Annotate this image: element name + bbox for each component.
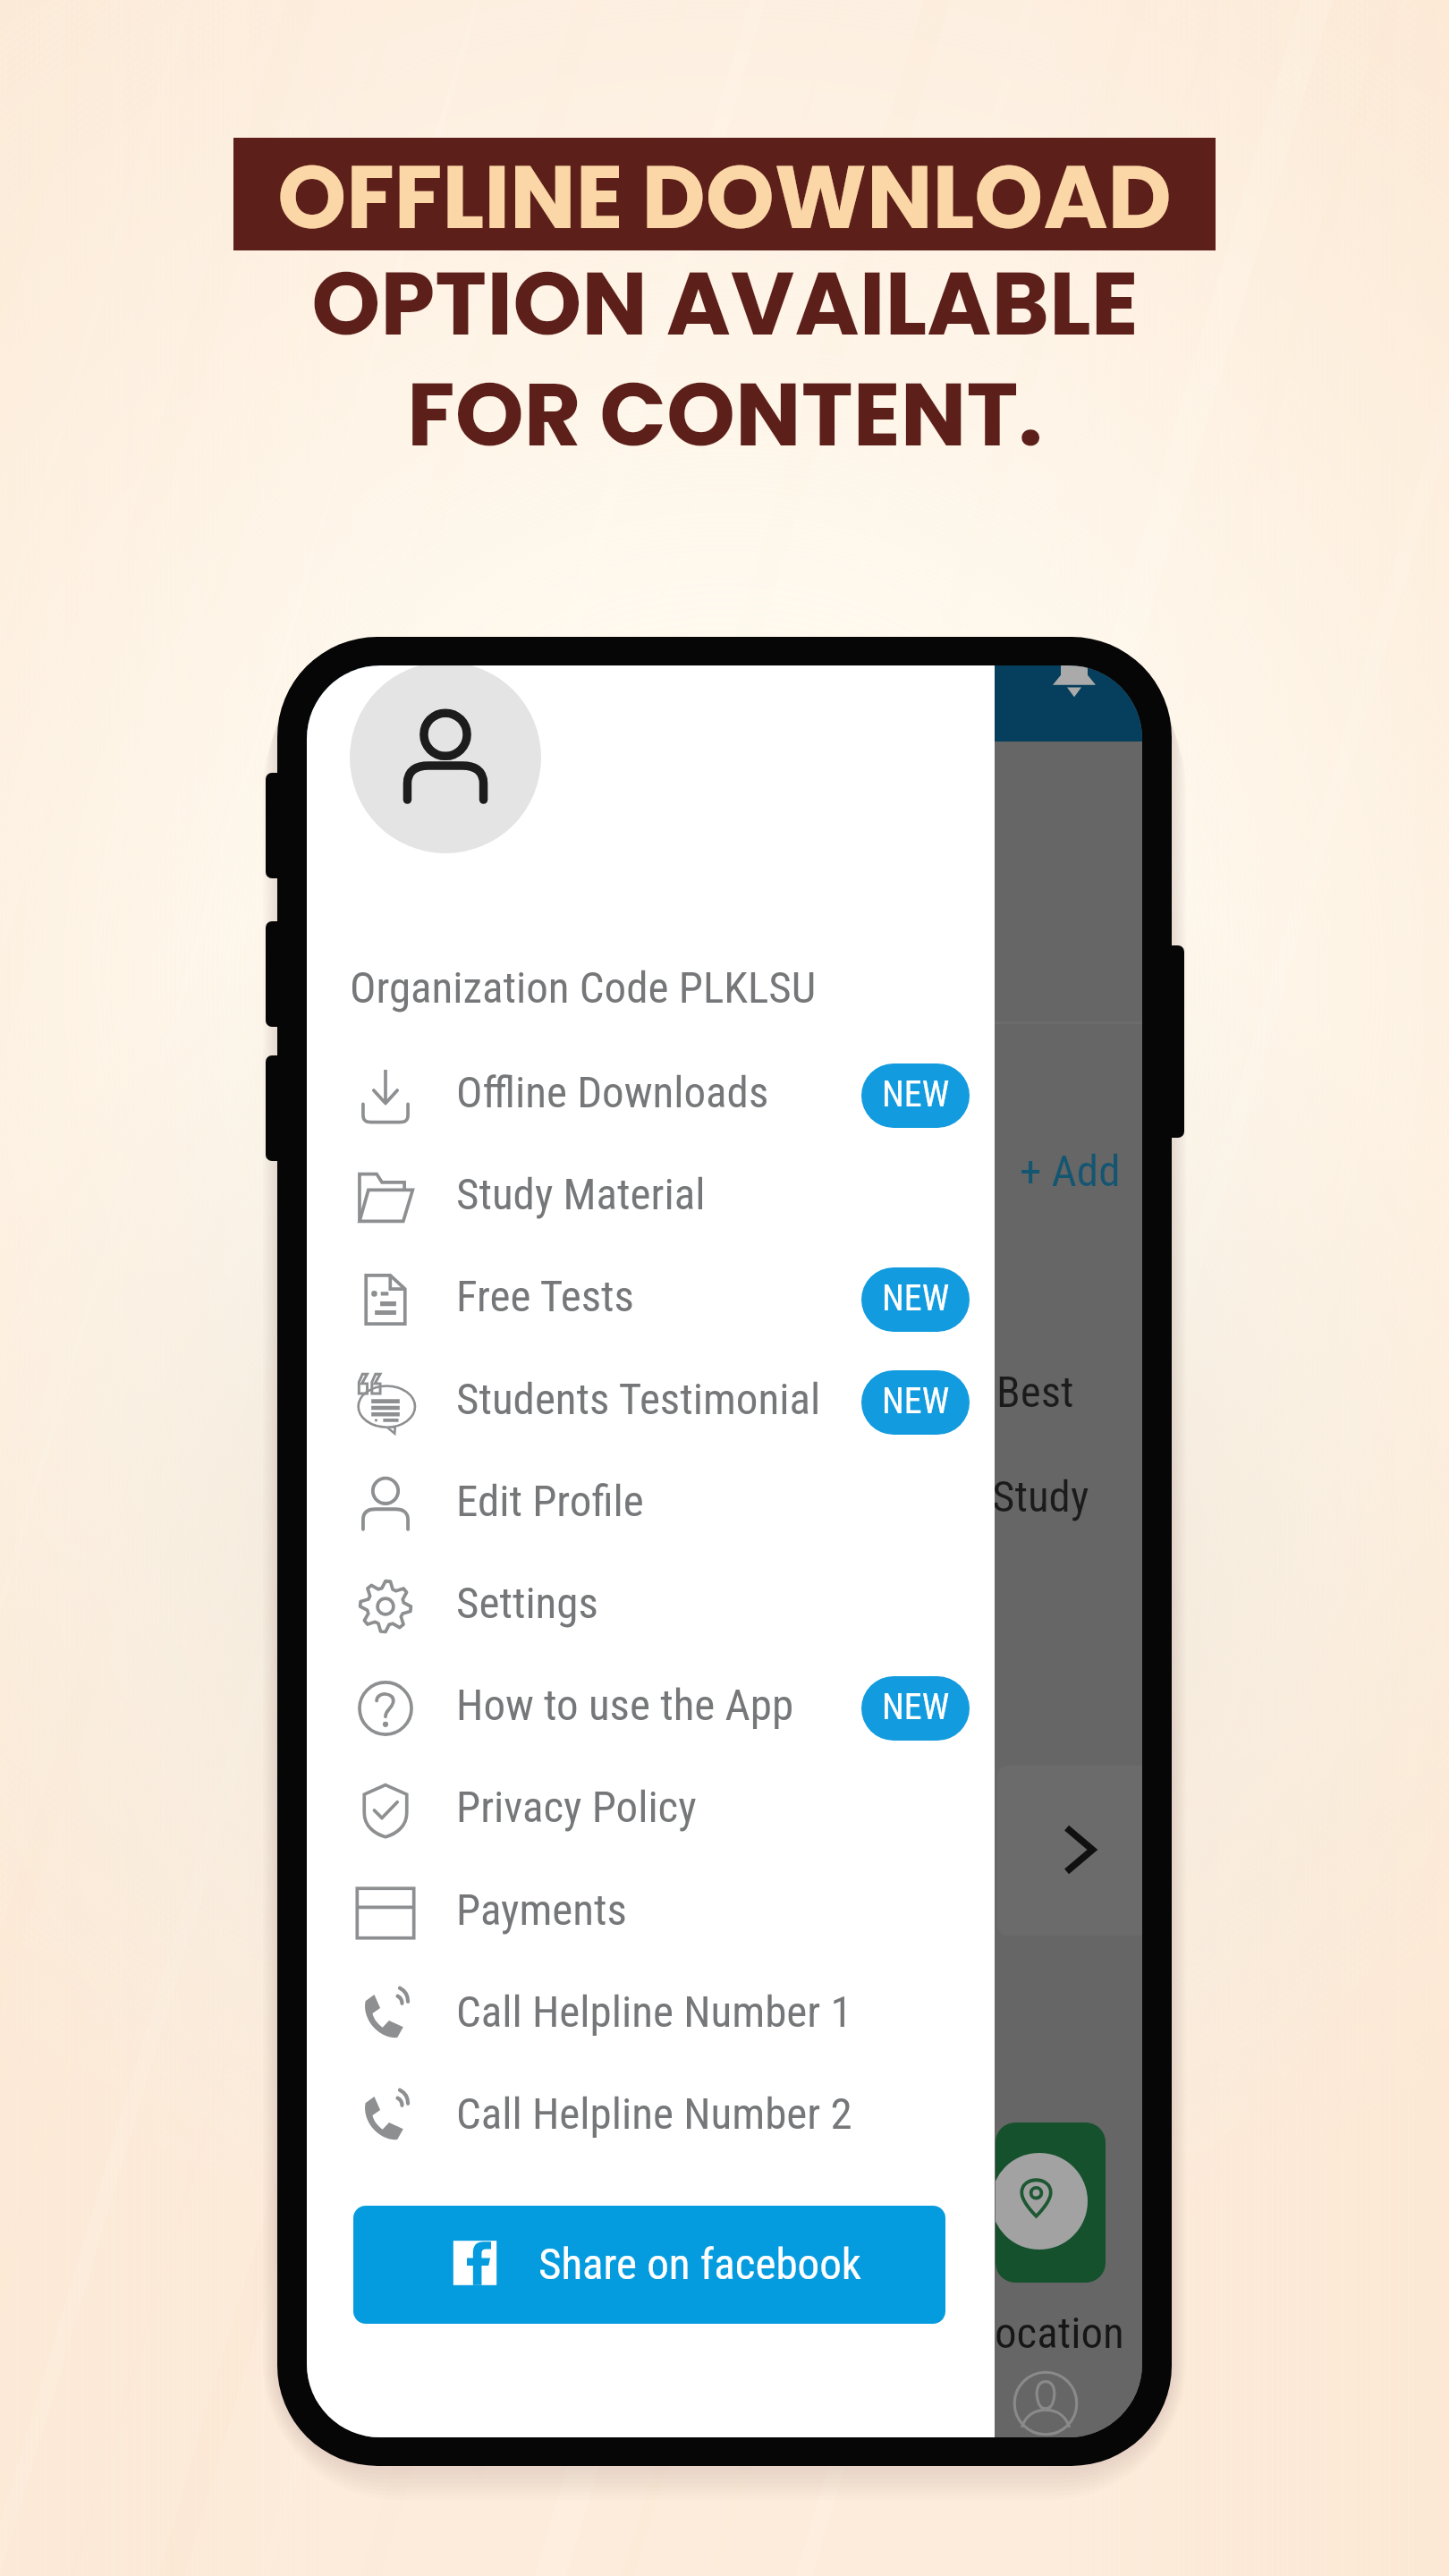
staticText: Study — [992, 1471, 1089, 1522]
staticText: NEW — [882, 1277, 950, 1319]
staticText: Privacy Policy — [456, 1782, 697, 1833]
button[interactable]: Call Helpline Number 1 — [307, 1964, 995, 2066]
button[interactable]: Location — [996, 2123, 1106, 2283]
button[interactable]: Edit Profile — [307, 1453, 995, 1555]
staticText: FOR CONTENT. — [407, 353, 1043, 476]
staticText: Share on facebook — [538, 2239, 861, 2290]
staticText: Settings — [456, 1578, 598, 1629]
button[interactable]: Next — [1063, 1824, 1097, 1876]
button[interactable]: Offline Downloads — [307, 1045, 995, 1147]
button[interactable]: Profile — [1013, 2370, 1079, 2436]
button[interactable]: Privacy Policy — [307, 1759, 995, 1861]
staticText: NEW — [882, 1686, 950, 1728]
staticText: OFFLINE DOWNLOAD — [277, 136, 1172, 249]
staticText: Best — [996, 1367, 1074, 1418]
staticText: How to use the App — [456, 1680, 794, 1731]
staticText: + Add — [1020, 1146, 1121, 1197]
button[interactable]: Profile picture — [350, 665, 541, 853]
staticText: Call Helpline Number 1 — [456, 1987, 852, 2038]
staticText: ocation — [995, 2308, 1124, 2359]
button[interactable]: Study Material — [307, 1147, 995, 1249]
staticText: Study Material — [456, 1169, 706, 1220]
button[interactable]: Payments — [307, 1862, 995, 1964]
staticText: Call Helpline Number 2 — [456, 2089, 852, 2140]
staticText: Organization Code PLKLSU — [350, 962, 817, 1013]
staticText: Students Testimonial — [456, 1374, 821, 1425]
staticText: OPTION AVAILABLE — [311, 242, 1139, 365]
button[interactable]: Settings — [307, 1555, 995, 1657]
button[interactable]: + Add — [1020, 1146, 1121, 1197]
button[interactable]: Call Helpline Number 2 — [307, 2066, 995, 2168]
button[interactable]: Share on facebook — [353, 2206, 945, 2324]
button[interactable]: How to use the App — [307, 1657, 995, 1759]
button[interactable]: Notifications — [1052, 665, 1097, 699]
button[interactable]: Students Testimonial — [307, 1352, 995, 1453]
staticText: Payments — [456, 1885, 627, 1936]
staticText: Offline Downloads — [456, 1067, 769, 1118]
staticText: NEW — [882, 1380, 950, 1422]
staticText: Free Tests — [456, 1271, 634, 1322]
button[interactable]: Free Tests — [307, 1249, 995, 1351]
staticText: Edit Profile — [456, 1476, 644, 1527]
staticText: NEW — [882, 1073, 950, 1115]
